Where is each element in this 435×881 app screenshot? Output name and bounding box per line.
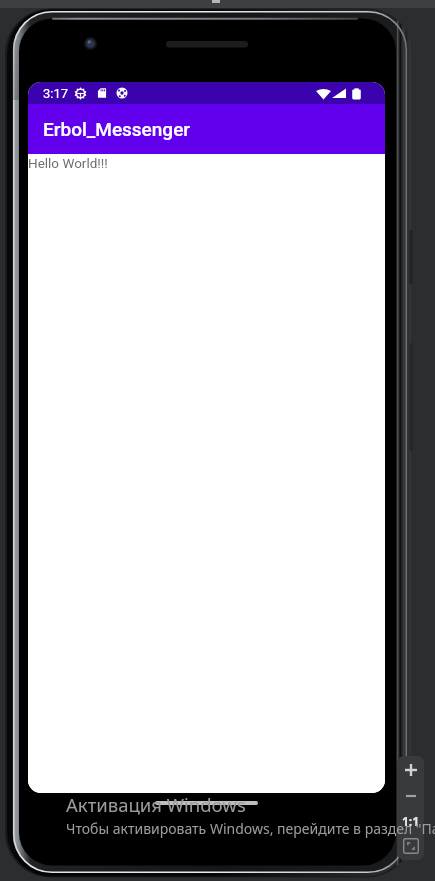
staticText: Hello World!!! [28,155,108,171]
button[interactable]: Erbol_Messenger [28,104,385,154]
staticText: Активация Windows [66,792,246,817]
staticText: Erbol_Messenger [43,118,191,140]
staticText: Чтобы активировать Windows, перейдите в … [66,819,435,838]
staticText: 1:1 [402,813,420,829]
button[interactable]: Zoom out [397,783,424,809]
button[interactable]: Fit to screen [397,833,424,859]
staticText: 3:17 [43,86,69,101]
button[interactable]: Zoom in [397,757,424,783]
button[interactable]: Actual size [397,808,424,833]
